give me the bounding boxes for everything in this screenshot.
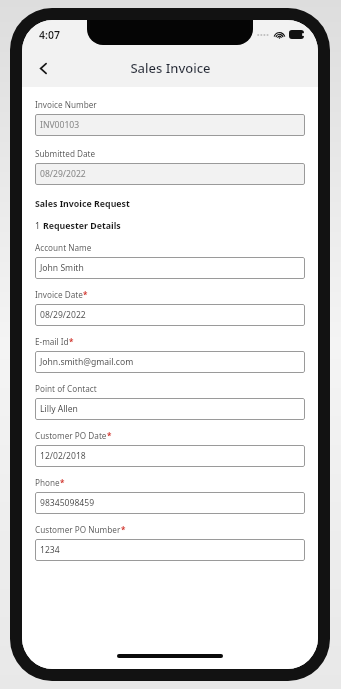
staticText: * — [69, 336, 74, 347]
staticText: * — [121, 524, 126, 535]
staticText: 1 — [35, 220, 43, 232]
staticText: Lilly Allen — [40, 403, 78, 415]
button[interactable]: 08/29/2022 — [35, 163, 305, 185]
staticText: * — [107, 430, 112, 441]
button[interactable]: INV00103 — [35, 114, 305, 136]
staticText: John Smith — [40, 262, 84, 274]
staticText: 4:07 — [39, 28, 60, 42]
staticText: 1234 — [40, 544, 60, 556]
button[interactable]: 08/29/2022 — [35, 304, 305, 326]
button[interactable]: John.smith@gmail.com — [35, 351, 305, 373]
staticText: Sales Invoice Request — [35, 198, 130, 210]
button[interactable]: Lilly Allen — [35, 398, 305, 420]
staticText: 08/29/2022 — [40, 168, 86, 180]
staticText: Sales Invoice — [130, 59, 211, 77]
staticText: John.smith@gmail.com — [40, 356, 134, 368]
staticText: Customer PO Number — [35, 524, 121, 535]
staticText: E-mail Id — [35, 336, 69, 347]
staticText: Phone — [35, 477, 60, 488]
staticText: Requester Details — [43, 220, 121, 232]
button[interactable]: Back — [28, 53, 58, 83]
staticText: INV00103 — [40, 119, 80, 131]
staticText: * — [83, 289, 88, 300]
staticText: 08/29/2022 — [40, 309, 86, 321]
staticText: Account Name — [35, 242, 92, 253]
staticText: Submitted Date — [35, 148, 96, 159]
staticText: Invoice Date — [35, 289, 83, 300]
button[interactable]: 12/02/2018 — [35, 445, 305, 467]
staticText: 12/02/2018 — [40, 450, 86, 462]
button[interactable]: John Smith — [35, 257, 305, 279]
button[interactable]: 98345098459 — [35, 492, 305, 514]
staticText: * — [60, 477, 65, 488]
staticText: Customer PO Date — [35, 430, 107, 441]
staticText: Point of Contact — [35, 383, 97, 394]
staticText: Invoice Number — [35, 99, 97, 110]
button[interactable]: 1234 — [35, 539, 305, 561]
staticText: 98345098459 — [40, 497, 95, 509]
